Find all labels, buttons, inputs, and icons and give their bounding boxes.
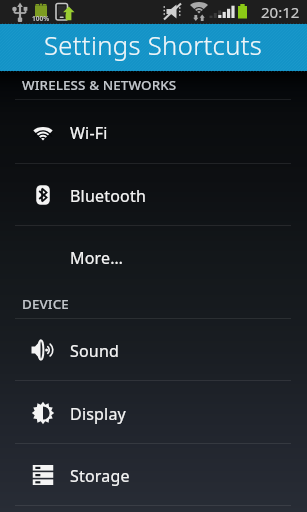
button[interactable]: Sound: [0, 318, 307, 380]
staticText: Wi-Fi: [70, 122, 108, 144]
button[interactable]: Wi-Fi: [0, 99, 307, 163]
staticText: 100%: [32, 14, 50, 23]
staticText: Sound: [70, 340, 120, 362]
staticText: More…: [70, 247, 124, 269]
staticText: Bluetooth: [70, 185, 147, 207]
button[interactable]: Storage: [0, 443, 307, 505]
staticText: 20:12: [261, 2, 300, 22]
button[interactable]: Display: [0, 380, 307, 443]
staticText: Settings Shortcuts: [44, 28, 263, 63]
staticText: Display: [70, 403, 126, 425]
button[interactable]: Bluetooth: [0, 163, 307, 225]
staticText: WIRELESS & NETWORKS: [22, 76, 177, 94]
button[interactable]: More…: [0, 225, 307, 287]
staticText: DEVICE: [22, 295, 69, 313]
staticText: Storage: [70, 465, 130, 487]
